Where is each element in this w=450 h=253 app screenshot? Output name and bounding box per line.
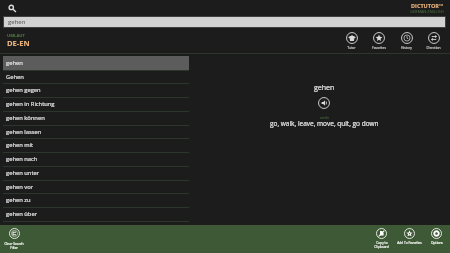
button[interactable]: gehen können [3, 111, 189, 125]
staticText: gehen nach [6, 155, 38, 163]
staticText: verb [320, 114, 329, 120]
staticText: gehen mit [6, 141, 34, 149]
button[interactable]: Play pronunciation [318, 97, 330, 109]
button[interactable]: Options [423, 228, 450, 245]
staticText: UMLAUT [7, 33, 25, 39]
staticText: gehen über [6, 210, 37, 218]
button[interactable]: gehen unter [3, 166, 189, 180]
button[interactable]: History [393, 32, 420, 49]
button[interactable]: Add To Favorites [396, 228, 423, 245]
staticText: GERMAN-ENGLISH [410, 9, 444, 14]
button[interactable]: Tutor [338, 32, 365, 49]
staticText: gehen unter [6, 169, 40, 177]
staticText: Direction [426, 45, 441, 49]
button[interactable]: Clear Search [0, 228, 28, 249]
staticText: Gehen [6, 73, 24, 81]
button[interactable]: gehen zu [3, 193, 189, 207]
staticText: Favorites [372, 45, 386, 49]
button[interactable]: UMLAUT [7, 33, 47, 49]
button[interactable]: Favorites [365, 32, 392, 49]
button[interactable]: gehen [3, 56, 189, 70]
button[interactable]: gehen [4, 17, 445, 27]
staticText: gehen [6, 59, 23, 67]
staticText: gehen vor [6, 183, 34, 191]
button[interactable]: Search [8, 4, 17, 13]
button[interactable]: gehen über [3, 207, 189, 221]
staticText: Add To Favorites [397, 241, 422, 245]
staticText: History [401, 45, 412, 49]
button[interactable]: gehen vor [3, 180, 189, 194]
staticText: Tutor [347, 45, 356, 49]
button[interactable]: Gehen [3, 70, 189, 84]
button[interactable]: gehen lassen [3, 125, 189, 139]
staticText: Copy to [376, 241, 388, 245]
staticText: go, walk, leave, move, quit, go down [270, 119, 379, 128]
staticText: gehen [8, 18, 26, 26]
staticText: Clipboard [374, 245, 389, 249]
staticText: Options [431, 241, 443, 245]
staticText: gehen lassen [6, 128, 42, 136]
staticText: gehen zu [6, 196, 31, 204]
button[interactable]: gehen in Richtung [3, 97, 189, 111]
button[interactable]: Direction [420, 32, 447, 49]
button[interactable]: gehen gegen [3, 83, 189, 97]
staticText: gehen können [6, 114, 45, 122]
staticText: DICTUTOR™ [411, 2, 444, 9]
button[interactable]: gehen nach [3, 152, 189, 166]
button[interactable]: gehen mit [3, 138, 189, 152]
staticText: gehen gegen [6, 86, 41, 94]
staticText: Filter [10, 245, 18, 249]
staticText: Clear Search [4, 241, 24, 245]
button[interactable]: Copy to [368, 228, 395, 249]
staticText: gehen in Richtung [6, 100, 55, 108]
staticText: DE-EN [7, 38, 30, 48]
staticText: gehen [314, 83, 335, 93]
button[interactable]: DICTUTOR™ [396, 2, 444, 14]
